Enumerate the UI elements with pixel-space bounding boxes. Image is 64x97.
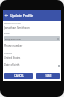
staticText: PERSONAL INFO <box>4 22 21 25</box>
staticText: Update Profile <box>10 13 34 18</box>
staticText: Email <box>4 32 10 35</box>
staticText: SAVE <box>45 74 52 78</box>
staticText: Phone number <box>4 44 23 48</box>
button[interactable]: jon@mail.com <box>4 36 60 41</box>
staticText: United States <box>4 56 21 60</box>
staticText: Jonathan Smithson <box>4 26 30 30</box>
staticText: jon@mail.com <box>5 37 21 40</box>
button[interactable]: CANCEL <box>4 73 33 79</box>
button[interactable]: Pick date <box>57 64 60 67</box>
button[interactable]: Back <box>4 13 9 18</box>
staticText: Date of birth <box>4 63 20 67</box>
staticText: Country <box>4 52 13 55</box>
staticText: CANCEL <box>14 74 24 78</box>
button[interactable]: SAVE <box>36 73 60 79</box>
